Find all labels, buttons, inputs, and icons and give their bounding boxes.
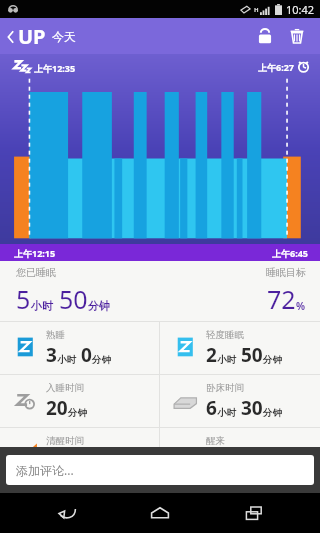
staticText: 清醒时间	[46, 435, 84, 447]
button[interactable]: 熟睡	[0, 322, 159, 374]
staticText: 小时	[217, 407, 236, 419]
staticText: 今天	[52, 29, 76, 44]
button[interactable]: Back	[40, 493, 94, 533]
staticText: 分钟	[263, 354, 282, 366]
staticText: 睡眠目标	[266, 266, 306, 279]
staticText: 20	[46, 395, 68, 421]
button[interactable]: 醒来	[160, 428, 320, 480]
staticText: 6	[206, 395, 217, 421]
button[interactable]: Delete	[282, 21, 312, 51]
staticText: 分钟	[92, 354, 111, 366]
staticText: 分钟	[263, 407, 282, 419]
staticText: 入睡时间	[46, 382, 84, 394]
staticText: 醒来	[206, 435, 225, 447]
staticText: 小时	[57, 354, 76, 366]
staticText: 上午12:15	[14, 247, 56, 259]
button[interactable]: 添加评论...	[6, 455, 314, 485]
staticText: 添加评论...	[16, 462, 74, 478]
staticText: 上午6:27	[258, 61, 294, 73]
staticText: %	[296, 299, 306, 313]
staticText: 3	[46, 342, 57, 368]
staticText: H	[254, 6, 259, 14]
staticText: 2	[206, 342, 217, 368]
staticText: 上午12:35	[34, 62, 76, 74]
button[interactable]: UP	[6, 23, 76, 50]
staticText: 5	[16, 282, 31, 316]
button[interactable]: 卧床时间	[160, 375, 320, 427]
staticText: 0	[81, 342, 92, 368]
staticText: 50	[241, 342, 263, 368]
staticText: 分钟	[88, 299, 110, 313]
staticText: 卧床时间	[206, 382, 244, 394]
staticText: 熟睡	[46, 329, 65, 341]
staticText: 您已睡眠	[16, 266, 56, 279]
staticText: 上午6:45	[272, 247, 308, 259]
staticText: 10:42	[286, 2, 315, 17]
staticText: 轻度睡眠	[206, 329, 244, 341]
staticText: 30	[241, 395, 263, 421]
staticText: 分钟	[68, 407, 87, 419]
staticText: 50	[59, 282, 88, 316]
button[interactable]: Home	[133, 493, 187, 533]
staticText: 40	[46, 448, 68, 474]
staticText: 小时	[31, 299, 53, 313]
staticText: 0	[206, 448, 217, 474]
staticText: UP	[18, 23, 46, 50]
staticText: 小时	[217, 354, 236, 366]
button[interactable]: 入睡时间	[0, 375, 159, 427]
button[interactable]: 清醒时间	[0, 428, 159, 480]
staticText: 72	[267, 282, 296, 316]
button[interactable]: Recent apps	[227, 493, 281, 533]
button[interactable]: Lock	[250, 21, 280, 51]
button[interactable]: 轻度睡眠	[160, 322, 320, 374]
